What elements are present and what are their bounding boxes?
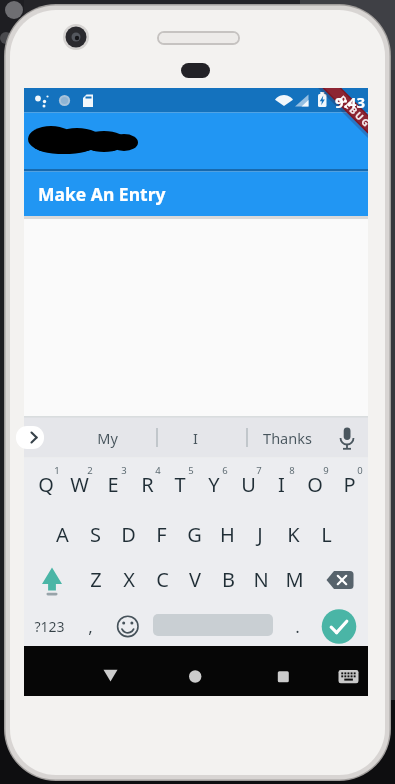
button[interactable]: H (210, 512, 244, 556)
button[interactable] (153, 610, 273, 640)
button[interactable]: F (144, 512, 178, 556)
button[interactable]: R (130, 462, 164, 506)
staticText: H (220, 521, 235, 548)
button[interactable]: My (85, 420, 130, 455)
staticText: U (241, 471, 256, 498)
button[interactable]: I (173, 420, 218, 455)
staticText: 6 (222, 464, 228, 477)
staticText: R (141, 471, 154, 498)
staticText: 2 (87, 464, 93, 477)
button[interactable] (334, 656, 362, 694)
button[interactable]: , (80, 612, 100, 640)
button[interactable]: I (264, 462, 298, 506)
staticText: X (123, 566, 135, 593)
staticText: N (253, 566, 269, 593)
staticText: 9:43 (335, 92, 365, 109)
button[interactable]: E (96, 462, 130, 506)
staticText: T (174, 471, 186, 498)
staticText: W (70, 471, 89, 498)
button[interactable]: Y (197, 462, 231, 506)
button[interactable]: C (145, 557, 179, 601)
button[interactable]: B (211, 557, 245, 601)
staticText: 0 (357, 464, 363, 477)
staticText: E (107, 471, 119, 498)
staticText: 7 (256, 464, 262, 477)
button[interactable]: P (332, 462, 366, 506)
button[interactable]: T (163, 462, 197, 506)
staticText: P (343, 471, 356, 498)
staticText: 5 (188, 464, 194, 477)
staticText: 3 (121, 464, 127, 477)
button[interactable]: Q (29, 462, 63, 506)
button[interactable] (322, 557, 362, 601)
button[interactable]: L (309, 512, 343, 556)
button[interactable]: O (298, 462, 332, 506)
staticText: 8 (289, 464, 295, 477)
button[interactable] (320, 607, 358, 645)
staticText: Y (208, 471, 220, 498)
staticText: . (295, 615, 300, 638)
button[interactable]: G (177, 512, 211, 556)
button[interactable] (175, 656, 215, 694)
button[interactable]: Thanks (258, 420, 316, 455)
button[interactable]: N (244, 557, 278, 601)
button[interactable]: . (287, 612, 307, 640)
button[interactable] (332, 424, 362, 451)
staticText: G (187, 521, 202, 548)
button[interactable]: J (243, 512, 277, 556)
staticText: ?123 (34, 617, 65, 636)
staticText: Thanks (263, 428, 312, 448)
button[interactable]: ?123 (31, 612, 67, 640)
button[interactable]: M (277, 557, 311, 601)
staticText: DEBUG (336, 93, 374, 131)
staticText: C (156, 566, 169, 593)
staticText: S (90, 521, 101, 548)
staticText: I (193, 428, 198, 448)
button[interactable]: Z (79, 557, 113, 601)
button[interactable]: K (276, 512, 310, 556)
button[interactable]: S (78, 512, 112, 556)
staticText: Q (38, 471, 54, 498)
staticText: I (278, 471, 285, 498)
staticText: 9 (323, 464, 329, 477)
button[interactable]: V (178, 557, 212, 601)
button[interactable] (36, 557, 70, 601)
staticText: Z (90, 566, 102, 593)
staticText: A (56, 521, 69, 548)
button[interactable] (90, 656, 130, 694)
button[interactable]: A (45, 512, 79, 556)
staticText: M (285, 566, 304, 593)
button[interactable] (16, 424, 46, 451)
button[interactable]: W (62, 462, 96, 506)
staticText: F (156, 521, 167, 548)
staticText: L (321, 521, 332, 548)
staticText: O (307, 471, 323, 498)
staticText: 4 (155, 464, 161, 477)
button[interactable] (263, 656, 303, 694)
staticText: K (287, 521, 300, 548)
staticText: D (121, 521, 136, 548)
staticText: B (222, 566, 235, 593)
staticText: Make An Entry (38, 182, 166, 206)
button[interactable]: U (231, 462, 265, 506)
staticText: J (257, 521, 263, 548)
staticText: V (189, 566, 201, 593)
button[interactable]: X (112, 557, 146, 601)
button[interactable]: D (111, 512, 145, 556)
staticText: 1 (54, 464, 60, 477)
staticText: , (88, 615, 93, 638)
button[interactable] (112, 610, 144, 644)
staticText: My (97, 428, 118, 448)
